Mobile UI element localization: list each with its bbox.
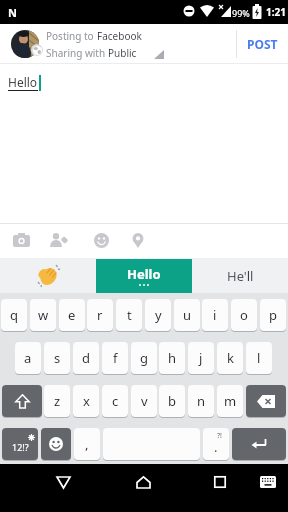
staticText: x bbox=[83, 392, 90, 410]
button[interactable] bbox=[0, 258, 96, 293]
staticText: o bbox=[240, 306, 248, 324]
button[interactable]: e bbox=[59, 299, 85, 331]
staticText: POST bbox=[247, 36, 278, 52]
button[interactable] bbox=[232, 428, 286, 460]
button[interactable]: j bbox=[188, 342, 214, 374]
staticText: n bbox=[197, 392, 206, 410]
button[interactable]: q bbox=[1, 299, 27, 331]
button[interactable] bbox=[8, 227, 34, 253]
staticText: N bbox=[8, 5, 17, 20]
staticText: w bbox=[38, 306, 49, 324]
staticText: k bbox=[227, 349, 234, 367]
staticText: z bbox=[54, 392, 61, 410]
staticText: , bbox=[85, 435, 89, 453]
button[interactable] bbox=[41, 428, 71, 460]
staticText: g bbox=[140, 349, 148, 367]
button[interactable]: l bbox=[246, 342, 272, 374]
staticText: . bbox=[214, 438, 218, 456]
button[interactable] bbox=[46, 227, 72, 253]
button[interactable]: b bbox=[159, 385, 185, 417]
button[interactable] bbox=[205, 467, 235, 497]
button[interactable]: h bbox=[159, 342, 185, 374]
staticText: q bbox=[10, 306, 18, 324]
staticText: Hello bbox=[127, 265, 161, 283]
button[interactable] bbox=[128, 467, 158, 497]
staticText: c bbox=[112, 392, 119, 410]
button[interactable]: POST bbox=[237, 24, 288, 64]
staticText: d bbox=[82, 349, 90, 367]
button[interactable] bbox=[255, 469, 281, 495]
staticText: f bbox=[113, 349, 118, 367]
staticText: 12!? bbox=[12, 441, 29, 453]
button[interactable]: ?! bbox=[203, 428, 229, 460]
staticText: y bbox=[155, 306, 162, 324]
button[interactable]: f bbox=[102, 342, 128, 374]
button[interactable]: n bbox=[188, 385, 214, 417]
staticText: v bbox=[141, 392, 148, 410]
button[interactable] bbox=[246, 385, 286, 417]
button[interactable]: v bbox=[131, 385, 157, 417]
staticText: ?! bbox=[217, 431, 222, 441]
button[interactable] bbox=[2, 385, 42, 417]
staticText: b bbox=[168, 392, 176, 410]
staticText: u bbox=[183, 306, 192, 324]
button[interactable]: w bbox=[30, 299, 56, 331]
button[interactable]: a bbox=[15, 342, 41, 374]
button[interactable]: Hello bbox=[96, 259, 192, 293]
button[interactable]: i bbox=[202, 299, 228, 331]
button[interactable]: x bbox=[73, 385, 99, 417]
button[interactable]: s bbox=[44, 342, 70, 374]
staticText: t bbox=[127, 306, 132, 324]
staticText: l bbox=[257, 349, 261, 367]
staticText: Public bbox=[108, 46, 137, 60]
button[interactable] bbox=[88, 227, 114, 253]
button[interactable]: u bbox=[174, 299, 200, 331]
button[interactable]: He'll bbox=[192, 258, 288, 293]
staticText: j bbox=[199, 349, 203, 367]
button[interactable]: p bbox=[260, 299, 286, 331]
button[interactable]: g bbox=[131, 342, 157, 374]
staticText: s bbox=[54, 349, 61, 367]
staticText: Facebook bbox=[97, 29, 142, 43]
staticText: Sharing with bbox=[46, 46, 108, 60]
button[interactable]: , bbox=[74, 428, 100, 460]
button[interactable]: o bbox=[231, 299, 257, 331]
button[interactable]: c bbox=[102, 385, 128, 417]
staticText: 1:21 bbox=[266, 5, 286, 19]
staticText: a bbox=[24, 349, 32, 367]
staticText: p bbox=[269, 306, 277, 324]
button[interactable]: m bbox=[217, 385, 243, 417]
button[interactable]: t bbox=[116, 299, 142, 331]
staticText: He'll bbox=[227, 267, 254, 285]
button[interactable] bbox=[48, 467, 78, 497]
button[interactable]: k bbox=[217, 342, 243, 374]
button[interactable]: y bbox=[145, 299, 171, 331]
button[interactable] bbox=[125, 227, 151, 253]
staticText: m bbox=[224, 392, 237, 410]
button[interactable]: 12!? bbox=[2, 428, 38, 460]
staticText: 99% bbox=[232, 7, 250, 19]
staticText: h bbox=[168, 349, 177, 367]
button[interactable]: d bbox=[73, 342, 99, 374]
staticText: i bbox=[213, 306, 217, 324]
staticText: Posting to bbox=[46, 29, 97, 43]
staticText: r bbox=[97, 306, 103, 324]
staticText: Hello bbox=[8, 74, 38, 90]
staticText: e bbox=[68, 306, 76, 324]
button[interactable]: r bbox=[87, 299, 113, 331]
button[interactable]: z bbox=[44, 385, 70, 417]
